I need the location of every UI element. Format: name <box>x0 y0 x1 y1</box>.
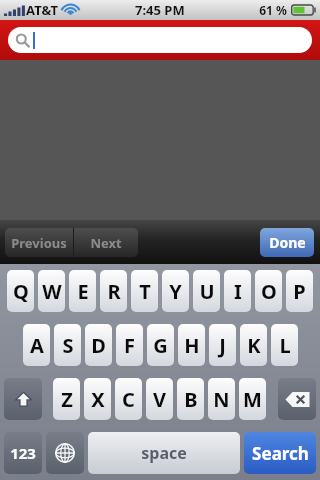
staticText: T <box>139 278 151 305</box>
button[interactable]: Next <box>74 228 138 257</box>
staticText: L <box>279 332 291 359</box>
button[interactable]: Shift <box>4 378 42 420</box>
staticText: P <box>293 278 306 305</box>
staticText: Q <box>13 278 29 305</box>
staticText: M <box>243 386 262 413</box>
button[interactable]: Done <box>260 228 314 257</box>
staticText: space <box>141 442 187 464</box>
staticText: Done <box>269 233 306 252</box>
button[interactable]: Previous <box>5 228 73 257</box>
staticText: E <box>77 278 89 305</box>
button[interactable]: Z <box>53 378 80 420</box>
staticText: A <box>30 332 44 359</box>
button[interactable]: Backspace <box>278 378 316 420</box>
staticText: G <box>153 332 168 359</box>
staticText: W <box>42 278 62 305</box>
button[interactable]: I <box>224 270 251 312</box>
staticText: Z <box>61 386 73 413</box>
staticText: Next <box>90 234 122 252</box>
button[interactable]: V <box>146 378 173 420</box>
button[interactable]: A <box>23 324 50 366</box>
staticText: 7:45 PM <box>135 1 185 19</box>
staticText: S <box>62 332 74 359</box>
button[interactable]: W <box>38 270 65 312</box>
button[interactable]: R <box>100 270 127 312</box>
button[interactable]: Search <box>244 432 316 474</box>
button[interactable]: L <box>271 324 298 366</box>
button[interactable]: D <box>85 324 112 366</box>
button[interactable]: O <box>255 270 282 312</box>
button[interactable]: X <box>84 378 111 420</box>
staticText: AT&T <box>26 1 58 19</box>
staticText: 61 % <box>259 2 287 18</box>
button[interactable]: Change keyboard <box>46 432 84 474</box>
staticText: V <box>153 386 166 413</box>
button[interactable]: C <box>115 378 142 420</box>
staticText: Y <box>169 278 182 305</box>
staticText: X <box>91 386 105 413</box>
staticText: H <box>184 332 200 359</box>
staticText: C <box>122 386 135 413</box>
staticText: D <box>91 332 106 359</box>
button[interactable]: B <box>177 378 204 420</box>
button[interactable]: space <box>88 432 240 474</box>
button[interactable]: P <box>286 270 313 312</box>
staticText: F <box>124 332 135 359</box>
staticText: J <box>219 332 226 359</box>
button[interactable]: M <box>239 378 266 420</box>
staticText: N <box>213 386 230 413</box>
staticText: U <box>199 278 215 305</box>
staticText: I <box>234 278 242 305</box>
button[interactable]: Numbers <box>4 432 42 474</box>
button[interactable]: S <box>54 324 81 366</box>
button[interactable]: Y <box>162 270 189 312</box>
button[interactable]: N <box>208 378 235 420</box>
staticText: 123 <box>10 443 36 463</box>
button[interactable]: U <box>193 270 220 312</box>
button[interactable]: E <box>69 270 96 312</box>
button[interactable]: H <box>178 324 205 366</box>
button[interactable]: F <box>116 324 143 366</box>
staticText: O <box>261 278 277 305</box>
button[interactable]: T <box>131 270 158 312</box>
staticText: K <box>247 332 261 359</box>
staticText: B <box>184 386 198 413</box>
staticText: R <box>107 278 121 305</box>
button[interactable]: Q <box>7 270 34 312</box>
button[interactable]: K <box>240 324 267 366</box>
button[interactable]: G <box>147 324 174 366</box>
staticText: Search <box>252 442 309 465</box>
button[interactable]: J <box>209 324 236 366</box>
button[interactable] <box>8 27 312 53</box>
staticText: Previous <box>11 234 67 252</box>
